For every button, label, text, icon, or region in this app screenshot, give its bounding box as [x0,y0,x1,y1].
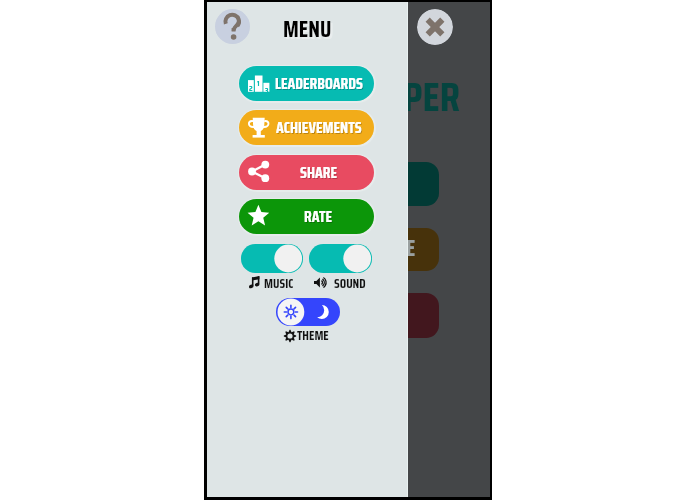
staticText: SHARE [301,161,339,186]
staticText: THEME [297,325,329,345]
staticText: MUSIC [264,273,294,293]
button[interactable]: Music toggle [241,244,303,273]
staticText: ACHIEVEMENTS [277,116,363,141]
button[interactable]: Theme toggle [276,298,340,326]
staticText: RATE [305,205,334,230]
button[interactable]: SHARE [239,155,374,190]
staticText: LEADERBOARDS [275,71,363,96]
staticText: 1 [257,77,260,90]
staticText: 2 [249,82,253,95]
staticText: RATE [304,204,333,229]
staticText: E [406,231,416,266]
button[interactable]: LEADERBOARDS [239,66,374,101]
staticText: SOUND [334,273,366,293]
staticText: MENU [283,11,332,46]
staticText: PER [403,64,460,129]
staticText: SHARE [300,160,338,185]
staticText: LEADERBOARDS [276,72,364,97]
button[interactable]: RATE [239,199,374,234]
button[interactable]: ACHIEVEMENTS [239,110,374,145]
button[interactable]: Sound toggle [309,244,372,273]
staticText: 3 [265,84,269,97]
button[interactable]: Help [215,9,250,44]
button[interactable]: Close [417,9,453,45]
staticText: MENU [285,13,334,48]
staticText: ACHIEVEMENTS [276,115,362,140]
